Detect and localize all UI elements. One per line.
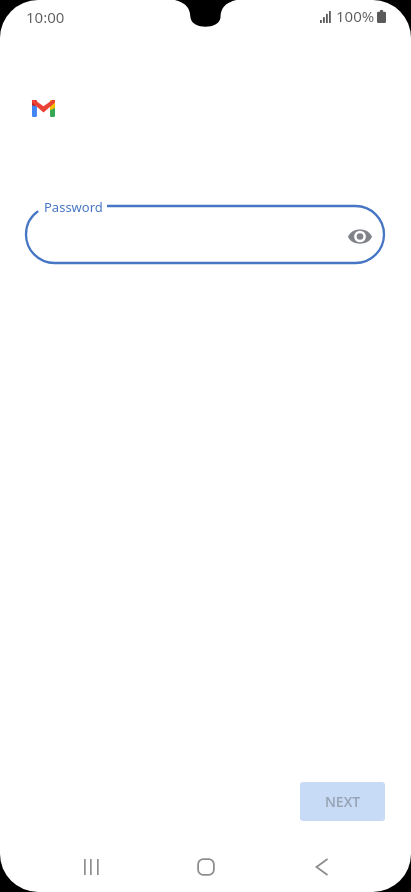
staticText: Password (44, 198, 103, 216)
staticText: 100% (336, 6, 375, 26)
staticText: NEXT (325, 792, 361, 811)
button[interactable]: Back (298, 843, 346, 891)
button[interactable]: Show password (344, 220, 376, 252)
button[interactable]: Recents (67, 843, 115, 891)
button[interactable]: Home (182, 843, 230, 891)
button[interactable]: NEXT (300, 782, 385, 821)
staticText: 10:00 (26, 7, 65, 27)
